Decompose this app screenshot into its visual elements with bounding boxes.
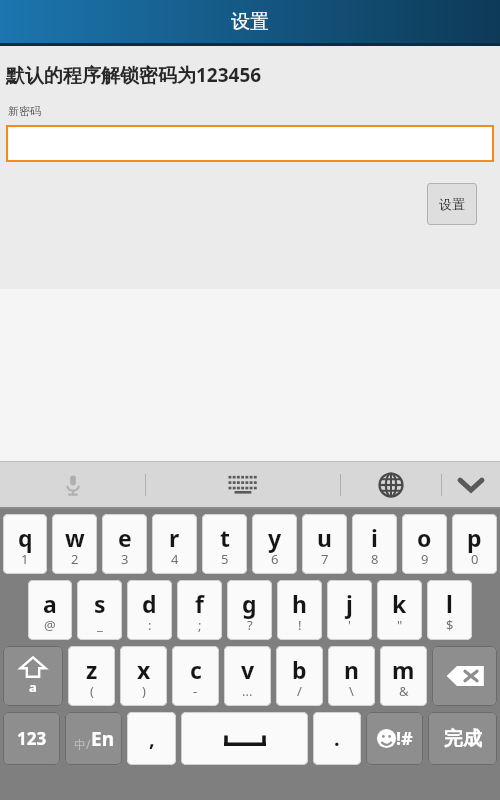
button[interactable]: n — [328, 646, 375, 706]
button[interactable]: a — [28, 580, 72, 640]
staticText: j — [346, 588, 353, 619]
staticText: v — [241, 654, 255, 685]
button[interactable]: i — [352, 514, 397, 574]
staticText: g — [242, 588, 257, 619]
staticText: 完成 — [444, 727, 482, 751]
staticText: r — [169, 522, 180, 553]
staticText: x — [137, 654, 151, 685]
staticText: a — [29, 678, 37, 696]
button[interactable]: b — [276, 646, 323, 706]
staticText: l — [446, 588, 453, 619]
button[interactable]: f — [177, 580, 222, 640]
staticText: / — [297, 682, 302, 700]
button[interactable]: Voice input — [0, 462, 145, 507]
button[interactable]: Change language — [341, 462, 441, 507]
staticText: ( — [90, 682, 94, 700]
button[interactable]: , — [127, 712, 176, 765]
staticText: u — [317, 522, 332, 553]
button[interactable]: j — [327, 580, 372, 640]
staticText: i — [371, 522, 378, 553]
staticText: q — [18, 522, 33, 553]
staticText: m — [392, 654, 415, 685]
staticText: z — [86, 654, 98, 685]
button[interactable]: q — [3, 514, 47, 574]
staticText: ... — [242, 682, 253, 700]
staticText: n — [344, 654, 359, 685]
staticText: 2 — [71, 550, 79, 568]
staticText: s — [94, 588, 106, 619]
staticText: 123 — [17, 727, 47, 750]
button[interactable]: . — [313, 712, 361, 765]
staticText: ' — [348, 616, 351, 634]
staticText: h — [292, 588, 307, 619]
staticText: k — [392, 588, 407, 619]
staticText: c — [190, 654, 202, 685]
staticText: 5 — [221, 550, 229, 568]
staticText: _ — [97, 616, 103, 634]
button[interactable]: e — [102, 514, 147, 574]
staticText: 默认的程序解锁密码为123456 — [6, 62, 262, 88]
staticText: ; — [198, 616, 202, 634]
button[interactable]: Hide keyboard — [442, 462, 500, 507]
staticText: 3 — [121, 550, 129, 568]
button[interactable]: s — [77, 580, 122, 640]
staticText: b — [292, 654, 307, 685]
button[interactable]: 123 — [3, 712, 60, 765]
button[interactable]: w — [52, 514, 97, 574]
button[interactable]: o — [402, 514, 447, 574]
button[interactable]: Backspace — [432, 646, 497, 706]
button[interactable]: t — [202, 514, 247, 574]
staticText: p — [467, 522, 482, 553]
staticText: w — [65, 522, 85, 553]
staticText: , — [149, 725, 155, 752]
button[interactable]: Space — [181, 712, 308, 765]
button[interactable] — [6, 125, 494, 162]
button[interactable]: p — [452, 514, 497, 574]
staticText: - — [193, 682, 198, 700]
staticText: 设置 — [439, 196, 465, 212]
button[interactable]: h — [277, 580, 322, 640]
button[interactable]: l — [427, 580, 472, 640]
staticText: 7 — [321, 550, 329, 568]
staticText: & — [399, 682, 409, 700]
button[interactable]: x — [120, 646, 167, 706]
button[interactable]: 中/ — [65, 712, 122, 765]
staticText: t — [220, 522, 230, 553]
staticText: f — [195, 588, 204, 619]
staticText: @ — [44, 616, 56, 634]
button[interactable]: 完成 — [428, 712, 497, 765]
button[interactable]: Shift — [3, 646, 63, 706]
staticText: 1 — [21, 550, 29, 568]
staticText: ! — [298, 616, 302, 634]
staticText: \ — [349, 682, 354, 700]
staticText: a — [43, 588, 57, 619]
staticText: " — [397, 616, 403, 634]
staticText: 中/ — [74, 736, 91, 752]
button[interactable]: r — [152, 514, 197, 574]
button[interactable]: 设置 — [427, 183, 477, 225]
button[interactable]: Emoji and symbols — [366, 712, 423, 765]
staticText: En — [91, 726, 114, 752]
button[interactable]: y — [252, 514, 297, 574]
staticText: ) — [142, 682, 146, 700]
staticText: o — [417, 522, 432, 553]
button[interactable]: g — [227, 580, 272, 640]
button[interactable]: m — [380, 646, 427, 706]
staticText: . — [334, 725, 340, 752]
staticText: !# — [396, 726, 413, 751]
staticText: y — [268, 522, 282, 553]
staticText: 9 — [421, 550, 429, 568]
staticText: $ — [446, 616, 454, 634]
button[interactable]: z — [68, 646, 115, 706]
button[interactable]: u — [302, 514, 347, 574]
staticText: 6 — [271, 550, 279, 568]
button[interactable]: Keyboard layout — [146, 462, 340, 507]
button[interactable]: c — [172, 646, 219, 706]
staticText: ? — [247, 616, 253, 634]
staticText: : — [148, 616, 152, 634]
button[interactable]: v — [224, 646, 271, 706]
button[interactable]: d — [127, 580, 172, 640]
staticText: 4 — [171, 550, 179, 568]
staticText: 设置 — [231, 10, 269, 34]
button[interactable]: k — [377, 580, 422, 640]
